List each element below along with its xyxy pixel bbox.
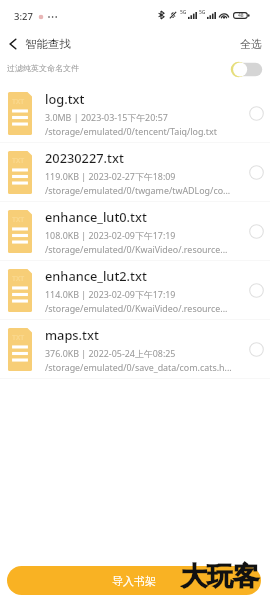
staticText: TXT	[12, 97, 25, 107]
staticText: 大玩客	[181, 560, 259, 593]
staticText: TXT	[12, 215, 25, 225]
staticText: enhance_lut2.txt	[45, 267, 147, 284]
staticText: maps.txt	[45, 326, 99, 343]
staticText: 全选	[240, 37, 262, 51]
staticText: /storage/emulated/0/KwaiVideo/.resource.…	[45, 302, 228, 314]
staticText: 导入书架	[112, 574, 156, 588]
staticText: TXT	[12, 333, 25, 343]
staticText: 114.0KB | 2023-02-09下午17:19	[45, 288, 176, 300]
staticText: 3.0MB | 2023-03-15下午20:57	[45, 111, 168, 123]
button[interactable]: TXT	[0, 202, 270, 261]
staticText: /storage/emulated/0/twgame/twADLog/co...	[45, 184, 231, 196]
staticText: 5G	[180, 9, 187, 16]
other: Back	[9, 38, 17, 50]
staticText: 5G	[199, 9, 206, 16]
button[interactable]: TXT	[0, 320, 270, 379]
staticText: 过滤纯英文命名文件	[7, 63, 79, 73]
staticText: /storage/emulated/0/tencent/Taiq/log.txt	[45, 125, 217, 137]
staticText: /storage/emulated/0/save_data/com.cats.h…	[45, 361, 232, 373]
staticText: 108.0KB | 2023-02-09下午17:19	[45, 229, 176, 241]
button[interactable]: Back	[0, 37, 79, 51]
staticText: log.txt	[45, 90, 85, 107]
staticText: 智能查找	[25, 37, 71, 51]
button[interactable]: 全选	[231, 37, 270, 51]
button[interactable]: TXT	[0, 143, 270, 202]
staticText: 48	[238, 12, 244, 19]
button[interactable]: 导入书架	[7, 566, 261, 595]
staticText: TXT	[12, 156, 25, 166]
button[interactable]: TXT	[0, 261, 270, 320]
staticText: enhance_lut0.txt	[45, 208, 147, 225]
button[interactable]: Toggle English-only filter	[232, 62, 263, 77]
staticText: 119.0KB | 2023-02-27下午18:09	[45, 170, 176, 182]
button[interactable]: TXT	[0, 84, 270, 143]
staticText: TXT	[12, 274, 25, 284]
staticText: 20230227.txt	[45, 149, 124, 166]
staticText: 376.0KB | 2022-05-24上午08:25	[45, 347, 176, 359]
staticText: 3:27	[14, 10, 33, 23]
staticText: /storage/emulated/0/KwaiVideo/.resource.…	[45, 243, 228, 255]
